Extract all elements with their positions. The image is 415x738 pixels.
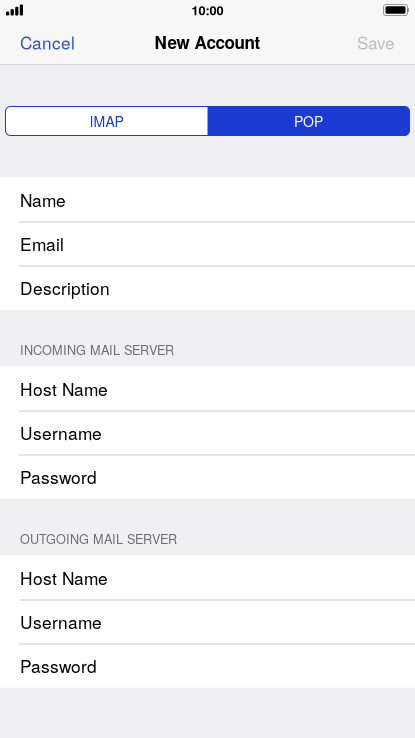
button[interactable]: Name: [0, 177, 415, 221]
button[interactable]: Cancel: [16, 22, 79, 62]
staticText: Host Name: [20, 565, 108, 590]
button[interactable]: Save: [353, 22, 399, 62]
staticText: IMAP: [89, 111, 123, 131]
button[interactable]: Username: [0, 599, 415, 643]
button[interactable]: Username: [0, 410, 415, 454]
button[interactable]: POP: [207, 106, 409, 135]
button[interactable]: Password: [0, 643, 415, 687]
staticText: Host Name: [20, 376, 108, 401]
staticText: Email: [20, 231, 64, 256]
staticText: 10:00: [191, 1, 223, 19]
button[interactable]: Email: [0, 221, 415, 265]
staticText: POP: [294, 111, 323, 131]
staticText: Username: [20, 609, 102, 634]
staticText: OUTGOING MAIL SERVER: [20, 529, 177, 547]
staticText: INCOMING MAIL SERVER: [20, 340, 174, 358]
button[interactable]: Description: [0, 265, 415, 309]
staticText: Name: [20, 187, 66, 212]
button[interactable]: IMAP: [5, 106, 207, 135]
staticText: Username: [20, 420, 102, 445]
staticText: New Account: [154, 30, 260, 54]
staticText: Description: [20, 275, 110, 300]
staticText: Password: [20, 464, 97, 489]
staticText: Cancel: [20, 30, 75, 54]
button[interactable]: Host Name: [0, 555, 415, 599]
button[interactable]: Host Name: [0, 366, 415, 410]
button[interactable]: Password: [0, 454, 415, 498]
staticText: Password: [20, 653, 97, 678]
staticText: Save: [357, 30, 395, 54]
